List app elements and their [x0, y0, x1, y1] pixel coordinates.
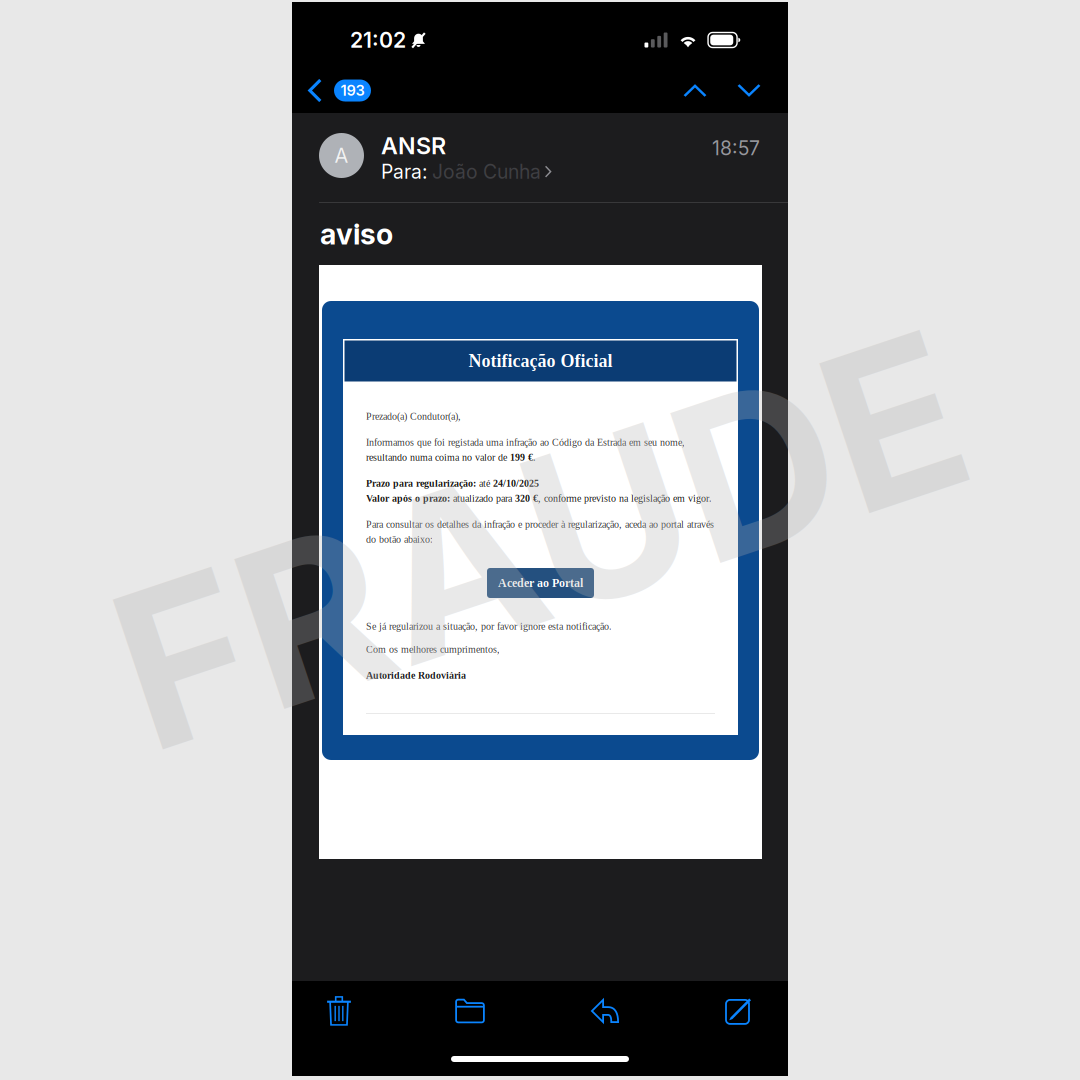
- staticText: resultando numa coima no valor de 199 €.: [366, 452, 536, 463]
- staticText: Para:: [381, 160, 428, 183]
- staticText: ANSR: [381, 132, 446, 160]
- staticText: Para consultar os detalhes da infração e…: [366, 519, 714, 530]
- button[interactable]: Next message: [723, 74, 775, 107]
- staticText: Aceder ao Portal: [498, 576, 583, 590]
- button[interactable]: Aceder ao Portal: [487, 568, 594, 598]
- staticText: 193: [340, 82, 364, 99]
- staticText: do botão abaixo:: [366, 534, 433, 545]
- staticText: 18:57: [712, 137, 760, 160]
- button[interactable]: 193: [292, 72, 381, 108]
- button[interactable]: Reply: [568, 988, 642, 1034]
- button[interactable]: Compose: [702, 988, 776, 1034]
- staticText: Prazo para regularização: até 24/10/2025: [366, 478, 539, 489]
- staticText: A: [334, 143, 348, 168]
- button[interactable]: Previous message: [669, 74, 721, 107]
- staticText: 21:02: [350, 27, 406, 53]
- staticText: Com os melhores cumprimentos,: [366, 644, 500, 655]
- staticText: Informamos que foi registada uma infraçã…: [366, 437, 685, 448]
- staticText: João Cunha: [432, 160, 541, 183]
- staticText: Valor após o prazo: atualizado para 320 …: [366, 493, 712, 504]
- staticText: Se já regularizou a situação, por favor …: [366, 621, 612, 632]
- button[interactable]: Delete: [302, 988, 376, 1034]
- staticText: Autoridade Rodoviária: [366, 670, 466, 681]
- staticText: FRAUDE: [101, 408, 978, 671]
- staticText: aviso: [320, 217, 393, 251]
- button[interactable]: Para:: [381, 160, 552, 181]
- button[interactable]: Move to folder: [433, 988, 507, 1034]
- staticText: Notificação Oficial: [468, 351, 612, 371]
- staticText: Prezado(a) Condutor(a),: [366, 411, 461, 422]
